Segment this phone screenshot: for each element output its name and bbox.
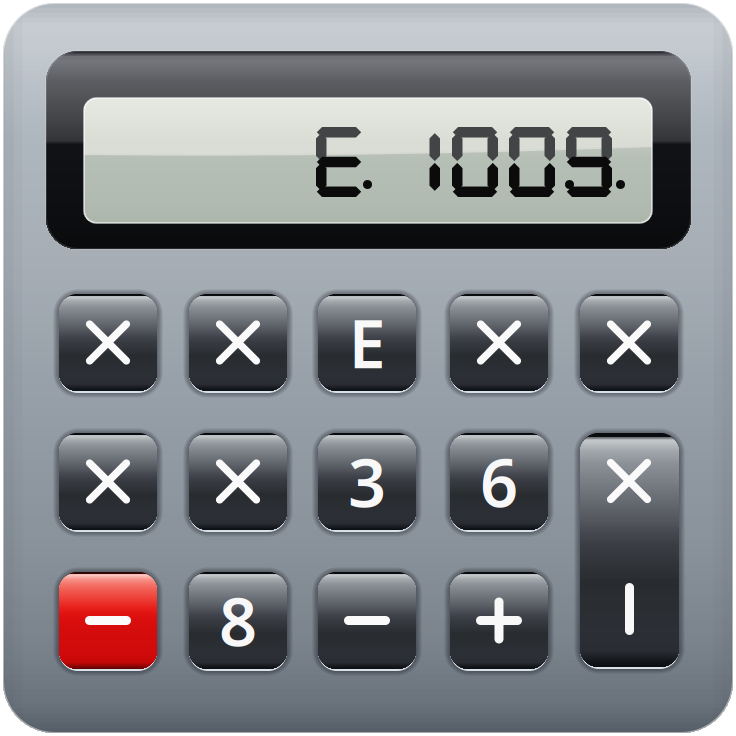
button[interactable]: Multiply — [189, 294, 287, 391]
staticText: E — [348, 298, 385, 387]
button[interactable]: 6 — [450, 433, 548, 530]
button[interactable]: Plus — [450, 572, 548, 669]
button[interactable]: E — [318, 294, 416, 391]
staticText: 3 — [348, 437, 386, 526]
button[interactable]: 8 — [189, 572, 287, 669]
button[interactable]: Multiply — [580, 294, 678, 391]
button[interactable]: 3 — [318, 433, 416, 530]
button[interactable]: Multiply — [189, 433, 287, 530]
button[interactable]: Minus — [318, 572, 416, 669]
button[interactable]: Multiply — [450, 294, 548, 391]
staticText: 6 — [480, 437, 518, 526]
button[interactable]: Multiply and divide — [580, 433, 679, 667]
staticText: 8 — [219, 576, 257, 665]
button[interactable]: Multiply — [59, 433, 157, 530]
button[interactable]: Multiply — [59, 294, 157, 391]
button[interactable]: Clear — [59, 572, 157, 669]
